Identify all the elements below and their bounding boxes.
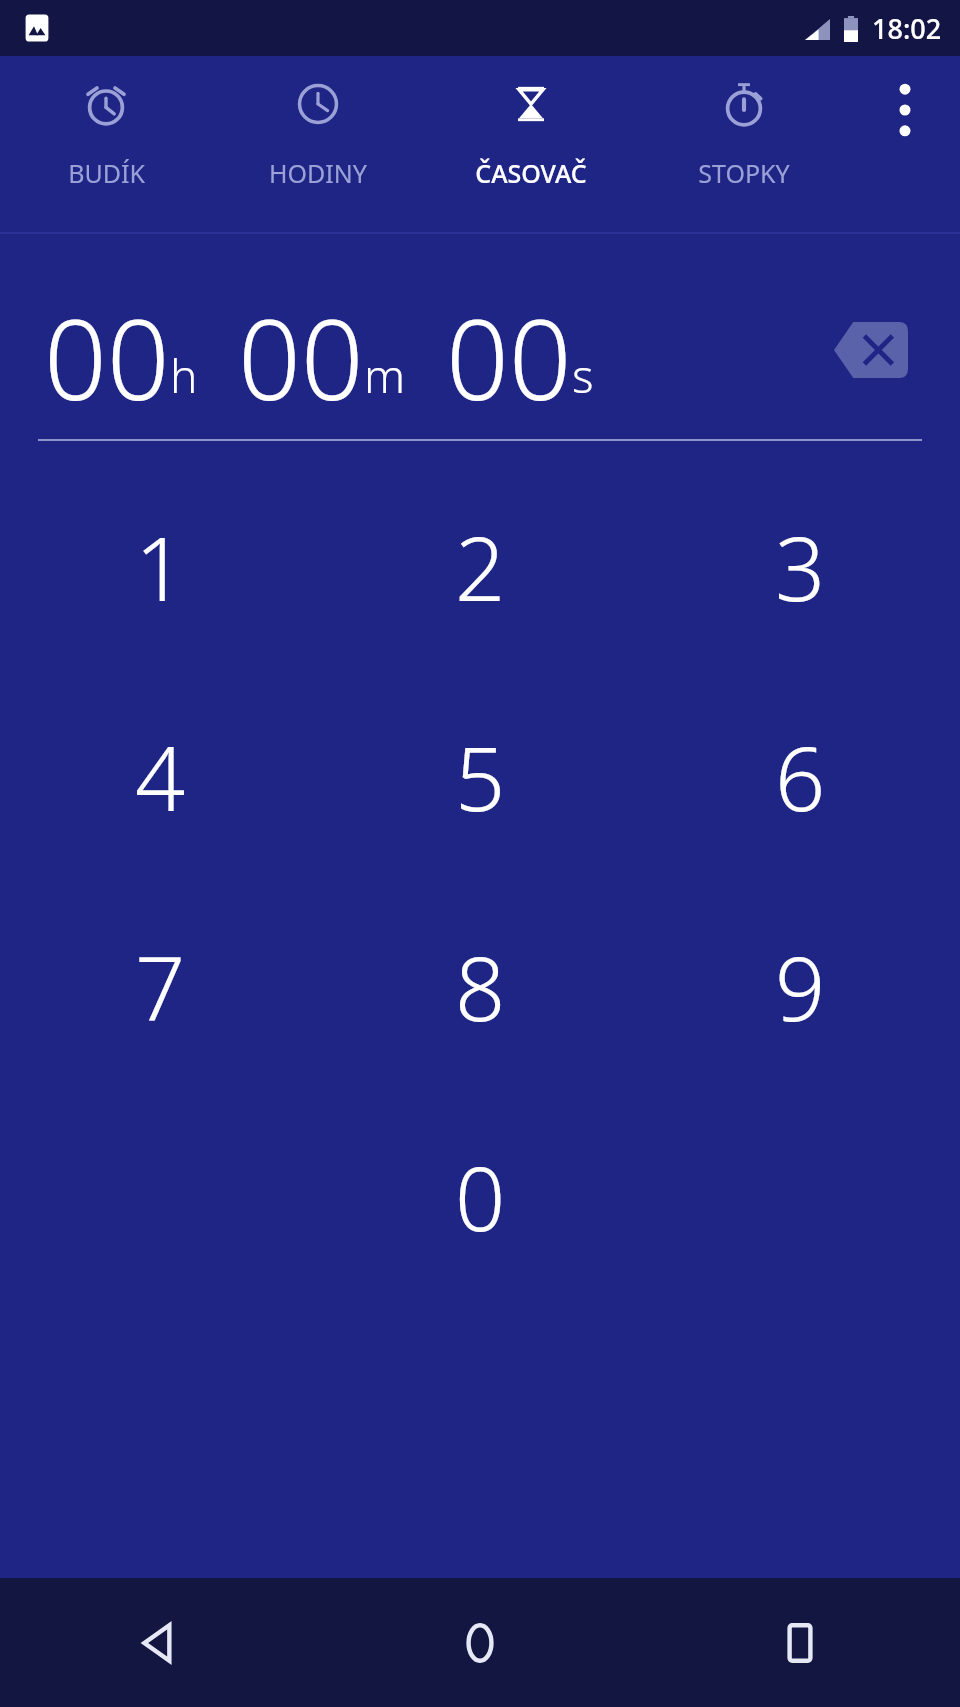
staticText: m (364, 344, 406, 407)
button[interactable]: BUDÍK (0, 56, 212, 226)
staticText: 00 (44, 282, 170, 417)
staticText: s (572, 344, 594, 407)
button[interactable]: STOPKY (637, 56, 850, 226)
button[interactable]: HODINY (212, 56, 424, 226)
button[interactable]: 9 (640, 882, 960, 1092)
staticText: 00 (446, 282, 572, 417)
button[interactable]: 8 (320, 882, 640, 1092)
staticText: 8 (455, 927, 506, 1047)
button[interactable]: Backspace (828, 313, 914, 387)
button[interactable]: 1 (0, 462, 320, 672)
staticText: 3 (775, 507, 826, 627)
staticText: 2 (455, 507, 506, 627)
staticText: h (170, 344, 198, 407)
button[interactable]: 3 (640, 462, 960, 672)
staticText: 4 (135, 717, 186, 837)
button[interactable]: 0 (320, 1092, 640, 1302)
staticText: 9 (775, 927, 826, 1047)
staticText: BUDÍK (68, 156, 145, 190)
staticText: 5 (455, 717, 506, 837)
staticText: 00 (238, 282, 364, 417)
button[interactable]: 5 (320, 672, 640, 882)
button[interactable]: 2 (320, 462, 640, 672)
staticText: 6 (775, 717, 826, 837)
button[interactable]: 4 (0, 672, 320, 882)
staticText: ČASOVAČ (475, 156, 587, 190)
button[interactable]: 6 (640, 672, 960, 882)
button[interactable]: Home (320, 1578, 640, 1707)
staticText: HODINY (269, 156, 367, 190)
staticText: 1 (135, 507, 186, 627)
staticText: 0 (455, 1137, 506, 1257)
button[interactable]: Recent apps (640, 1578, 960, 1707)
staticText: 7 (135, 927, 186, 1047)
staticText: STOPKY (698, 156, 790, 190)
staticText: 18:02 (872, 10, 942, 47)
button[interactable]: Back (0, 1578, 320, 1707)
button[interactable]: More options (850, 56, 960, 226)
button[interactable]: 7 (0, 882, 320, 1092)
button[interactable]: ČASOVAČ (424, 56, 637, 226)
